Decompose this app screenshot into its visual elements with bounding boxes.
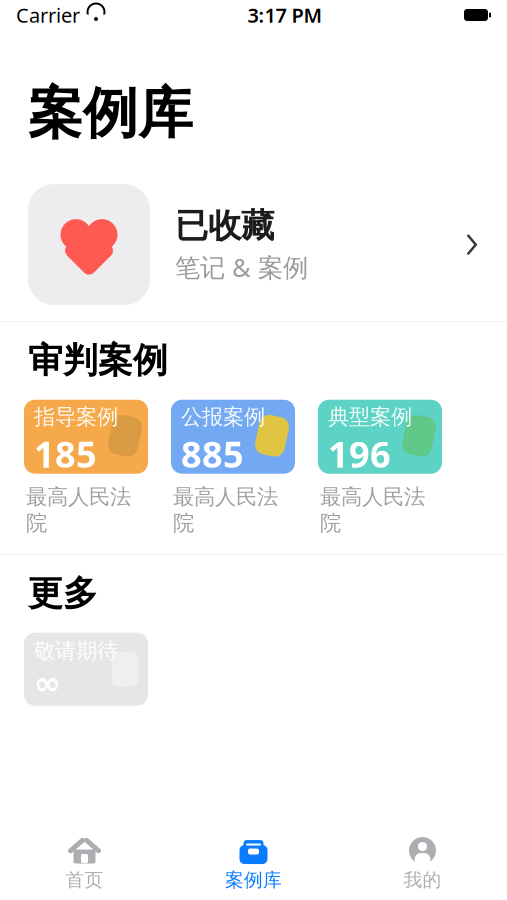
staticText: 已收藏 [175,205,274,246]
button[interactable]: 公报案例 [171,400,295,536]
button[interactable]: 首页 [0,830,169,897]
staticText: 敬请期待 [34,638,118,664]
button[interactable]: 指导案例 [24,400,148,536]
staticText: 公报案例 [181,404,265,430]
staticText: 首页 [65,868,103,891]
button[interactable]: 典型案例 [318,400,442,536]
staticText: 更多 [28,572,98,615]
staticText: 典型案例 [328,404,412,430]
staticText: 审判案例 [28,339,168,382]
staticText: 指导案例 [34,404,118,430]
staticText: 最高人民法院 [173,484,278,536]
staticText: 196 [328,430,391,478]
staticText: 案例库 [225,868,282,891]
staticText: Carrier [16,2,80,28]
staticText: 185 [34,430,97,478]
button[interactable]: 敬请期待 [24,633,148,706]
button[interactable]: 我的 [338,830,507,897]
staticText: 最高人民法院 [26,484,131,536]
staticText: 我的 [403,868,441,891]
staticText: 3:17 PM [247,2,322,28]
button[interactable]: 案例库 [169,830,338,897]
staticText: 笔记 & 案例 [175,250,308,284]
button[interactable]: 已收藏 [0,168,507,321]
staticText: 最高人民法院 [320,484,425,536]
staticText: 案例库 [28,80,193,147]
staticText: 885 [181,430,244,478]
staticText: ∞ [34,665,61,701]
